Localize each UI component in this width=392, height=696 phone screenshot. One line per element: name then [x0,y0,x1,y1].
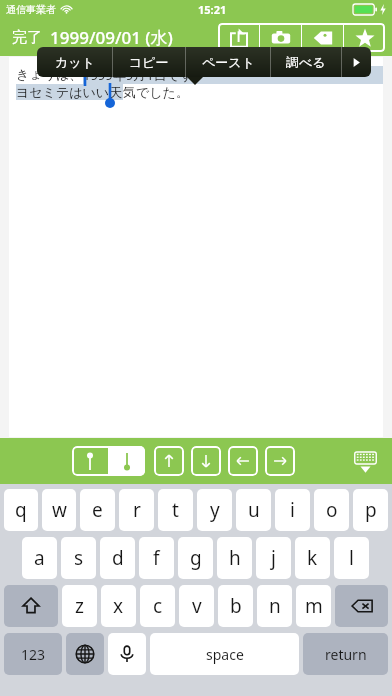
button[interactable]: Shift [4,585,58,627]
button[interactable]: k [295,537,330,579]
button[interactable]: m [296,585,331,627]
button[interactable]: j [256,537,291,579]
staticText: h [229,545,241,571]
staticText: b [230,593,242,619]
staticText: 123 [21,645,46,664]
staticText: n [269,593,281,619]
button[interactable]: Camera [260,23,301,52]
button[interactable]: n [257,585,292,627]
staticText: c [153,593,163,619]
staticText: ヨセミテはいい天 [16,84,123,100]
staticText: j [271,545,276,571]
button[interactable]: i [275,489,310,531]
button[interactable]: z [62,585,97,627]
button[interactable]: Share [218,23,259,52]
button[interactable]: Selection start [72,446,108,476]
staticText: i [290,497,295,523]
staticText: 15:21 [198,2,227,17]
staticText: x [113,593,124,619]
button[interactable]: 123 [4,633,62,675]
staticText: 1999年9月1日です。 [83,66,207,84]
button[interactable]: o [314,489,349,531]
button[interactable]: y [197,489,232,531]
button[interactable]: Dictation [108,633,146,675]
staticText: コピー [129,54,169,70]
staticText: m [305,593,323,619]
button[interactable]: Up [154,446,184,476]
button[interactable]: 完了 [12,28,42,47]
staticText: o [326,497,338,523]
button[interactable]: Next keyboard [66,633,104,675]
button[interactable]: Favorite [344,23,385,52]
button[interactable]: p [353,489,388,531]
staticText: y [210,497,220,523]
button[interactable]: b [218,585,253,627]
staticText: return [325,645,367,664]
button[interactable]: space [150,633,299,675]
staticText: f [153,545,160,571]
staticText: space [206,645,244,664]
button[interactable]: カット [37,47,112,77]
staticText: g [190,545,202,571]
staticText: v [192,593,202,619]
staticText: 完了 [12,28,42,47]
button[interactable]: コピー [113,47,185,77]
button[interactable]: 調べる [271,47,341,77]
staticText: u [248,497,260,523]
button[interactable]: v [179,585,214,627]
staticText: 気でした。 [123,84,189,100]
staticText: きょうは、 [16,66,83,82]
button[interactable]: Hide keyboard [348,444,382,478]
staticText: z [75,593,84,619]
staticText: 1999/09/01 (水) [50,26,173,49]
button[interactable]: w [42,489,76,531]
staticText: 調べる [286,54,326,70]
button[interactable]: g [178,537,213,579]
staticText: l [349,545,354,571]
button[interactable]: u [236,489,271,531]
button[interactable]: t [158,489,193,531]
button[interactable]: Selection end [109,446,145,476]
button[interactable]: x [101,585,136,627]
button[interactable]: return [303,633,388,675]
button[interactable]: r [119,489,154,531]
button[interactable]: Tag [302,23,343,52]
button[interactable]: h [217,537,252,579]
staticText: ペースト [202,54,255,70]
button[interactable]: e [80,489,115,531]
staticText: s [74,545,84,571]
staticText: t [172,497,179,523]
staticText: p [365,497,377,523]
button[interactable]: More [342,47,371,77]
staticText: d [112,545,124,571]
staticText: 通信事業者 [6,3,56,16]
button[interactable]: ペースト [186,47,270,77]
staticText: q [15,497,27,523]
staticText: w [52,497,67,523]
staticText: a [34,545,45,571]
staticText: r [133,497,141,523]
button[interactable]: Right [265,446,295,476]
button[interactable]: q [4,489,38,531]
button[interactable]: s [61,537,96,579]
button[interactable]: c [140,585,175,627]
button[interactable]: a [22,537,57,579]
button[interactable]: l [334,537,369,579]
staticText: e [92,497,103,523]
button[interactable]: f [139,537,174,579]
button[interactable]: Backspace [335,585,388,627]
button[interactable]: Left [228,446,258,476]
staticText: カット [55,54,95,70]
staticText: k [307,545,318,571]
button[interactable]: d [100,537,135,579]
button[interactable]: Down [191,446,221,476]
